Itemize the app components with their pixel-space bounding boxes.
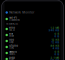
staticText: 0 B [54, 53, 59, 56]
button[interactable]: en1 [5, 32, 59, 38]
staticText: 4 KB [52, 47, 59, 50]
staticText: Wi-Fi [9, 16, 17, 19]
staticText: pdp [9, 56, 15, 59]
staticText: 88 KB [50, 44, 59, 47]
staticText: 0 B [54, 35, 59, 38]
staticText: AWDL [9, 53, 15, 56]
staticText: lo0 [9, 38, 14, 41]
button[interactable]: lo0 [5, 38, 59, 44]
staticText: 0 B [54, 32, 59, 35]
staticText: 0 B [54, 50, 59, 53]
staticText: Connected [9, 19, 19, 22]
staticText: Wi-Fi [9, 29, 15, 32]
staticText: utun0 [9, 44, 18, 47]
staticText: Loop [9, 41, 13, 44]
staticText: Ether [9, 35, 14, 38]
staticText: 512 KB [49, 59, 59, 60]
staticText: 340 KB [48, 29, 59, 32]
button[interactable]: pdp [5, 56, 59, 60]
staticText: 12 KB [51, 41, 59, 44]
staticText: 2.1 MB [50, 56, 59, 59]
staticText: 1.2 MB [50, 26, 59, 29]
staticText: en0 [9, 26, 15, 29]
staticText: Network Monitor [9, 11, 34, 14]
staticText: VPN [9, 47, 14, 50]
button[interactable]: awdl0 [5, 50, 59, 56]
staticText: Cell [9, 59, 14, 60]
staticText: en1 [9, 32, 13, 35]
button[interactable]: en0 [5, 26, 59, 32]
staticText: awdl0 [9, 50, 17, 53]
button[interactable]: Wi-Fi [5, 16, 59, 22]
staticText: INTERFACES [5, 23, 17, 25]
button[interactable]: utun0 [5, 44, 59, 50]
staticText: 12 KB [51, 38, 59, 41]
